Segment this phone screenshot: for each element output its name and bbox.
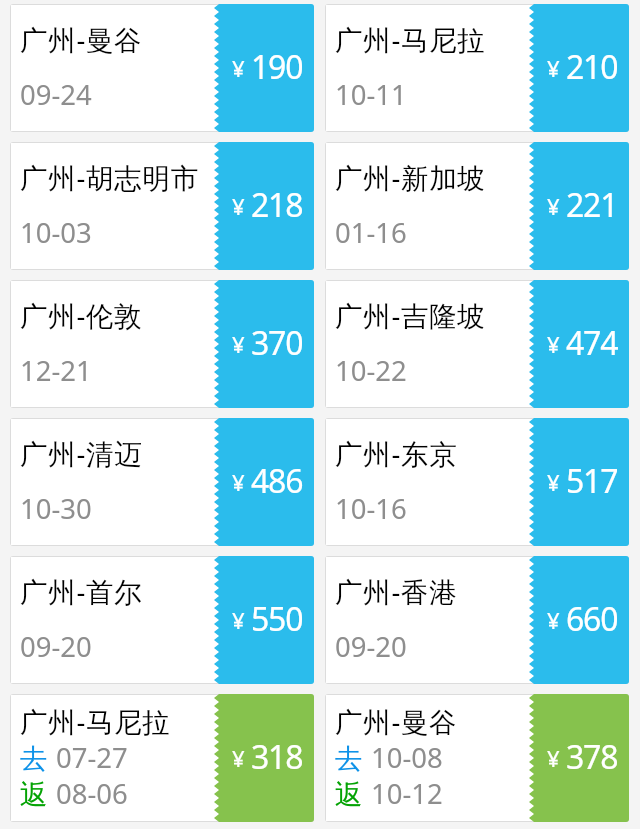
staticText: 517 [566, 459, 618, 503]
staticText: 660 [566, 597, 618, 641]
staticText: 10-16 [335, 490, 407, 527]
button[interactable]: 广州-伦敦 [10, 280, 314, 408]
staticText: 370 [251, 321, 303, 365]
staticText: 广州-东京 [335, 435, 458, 473]
button[interactable]: 广州-曼谷 [10, 4, 314, 132]
staticText: 广州-曼谷 [20, 21, 143, 59]
staticText: 218 [251, 183, 303, 227]
staticText: ¥ [547, 329, 560, 359]
staticText: ¥ [547, 53, 560, 83]
button[interactable]: 广州-吉隆坡 [325, 280, 629, 408]
staticText: 210 [566, 45, 618, 89]
staticText: ¥ [232, 329, 245, 359]
button[interactable]: 广州-清迈 [10, 418, 314, 546]
staticText: 09-20 [20, 628, 92, 665]
staticText: 550 [251, 597, 303, 641]
staticText: 返 [20, 778, 49, 813]
staticText: 广州-曼谷 [335, 703, 458, 741]
staticText: 318 [251, 735, 303, 779]
staticText: 09-20 [335, 628, 407, 665]
staticText: 221 [566, 183, 618, 227]
staticText: 广州-马尼拉 [20, 703, 171, 741]
button[interactable]: 广州-香港 [325, 556, 629, 684]
button[interactable]: 广州-曼谷 [325, 694, 629, 822]
staticText: 10-03 [20, 214, 92, 251]
staticText: ¥ [547, 467, 560, 497]
staticText: 12-21 [20, 352, 92, 389]
staticText: 广州-新加坡 [335, 159, 486, 197]
button[interactable]: 广州-东京 [325, 418, 629, 546]
staticText: ¥ [547, 605, 560, 635]
staticText: ¥ [232, 191, 245, 221]
staticText: 08-06 [56, 775, 128, 812]
staticText: 01-16 [335, 214, 407, 251]
staticText: 广州-伦敦 [20, 297, 143, 335]
button[interactable]: 广州-首尔 [10, 556, 314, 684]
staticText: 190 [251, 45, 303, 89]
staticText: 广州-清迈 [20, 435, 143, 473]
staticText: 10-11 [335, 76, 407, 113]
staticText: 广州-香港 [335, 573, 458, 611]
staticText: 07-27 [56, 739, 128, 776]
staticText: 广州-吉隆坡 [335, 297, 486, 335]
staticText: ¥ [232, 743, 245, 773]
staticText: ¥ [232, 605, 245, 635]
staticText: 返 [335, 778, 364, 813]
staticText: 去 [20, 742, 49, 777]
button[interactable]: 广州-马尼拉 [10, 694, 314, 822]
staticText: 广州-马尼拉 [335, 21, 486, 59]
staticText: 去 [335, 742, 364, 777]
staticText: ¥ [547, 191, 560, 221]
staticText: 10-12 [371, 775, 443, 812]
staticText: 10-22 [335, 352, 407, 389]
button[interactable]: 广州-新加坡 [325, 142, 629, 270]
staticText: 10-30 [20, 490, 92, 527]
staticText: ¥ [547, 743, 560, 773]
staticText: 广州-胡志明市 [20, 159, 199, 197]
staticText: 486 [251, 459, 303, 503]
staticText: 378 [566, 735, 618, 779]
staticText: 10-08 [371, 739, 443, 776]
staticText: 09-24 [20, 76, 92, 113]
staticText: ¥ [232, 467, 245, 497]
button[interactable]: 广州-马尼拉 [325, 4, 629, 132]
staticText: 广州-首尔 [20, 573, 143, 611]
staticText: ¥ [232, 53, 245, 83]
button[interactable]: 广州-胡志明市 [10, 142, 314, 270]
staticText: 474 [566, 321, 618, 365]
